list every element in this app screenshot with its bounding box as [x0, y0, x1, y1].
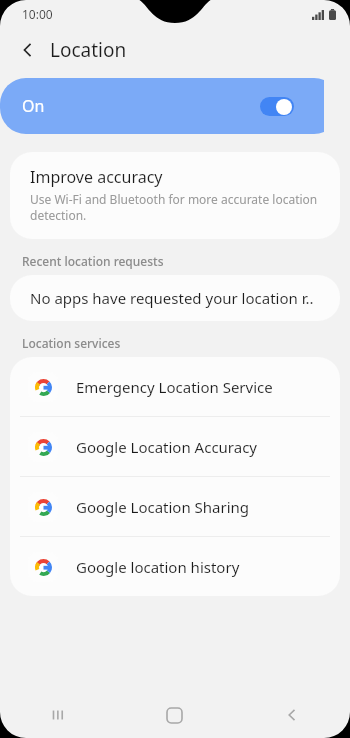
- button[interactable]: Google Location Accuracy: [10, 417, 340, 476]
- button[interactable]: Emergency Location Service: [10, 357, 340, 416]
- staticText: Use Wi-Fi and Bluetooth for more accurat…: [30, 191, 322, 223]
- button[interactable]: Back: [233, 692, 350, 738]
- staticText: No apps have requested your location r..: [30, 288, 314, 308]
- button[interactable]: Google location history: [10, 537, 340, 596]
- button[interactable]: No apps have requested your location r..: [10, 275, 340, 321]
- staticText: 10:00: [22, 6, 53, 22]
- button[interactable]: Location on: [260, 97, 294, 116]
- button[interactable]: Google Location Sharing: [10, 477, 340, 536]
- staticText: Google location history: [76, 557, 240, 577]
- staticText: Location services: [22, 335, 121, 351]
- staticText: On: [22, 95, 45, 117]
- staticText: Google Location Accuracy: [76, 437, 258, 457]
- staticText: Emergency Location Service: [76, 377, 273, 397]
- button[interactable]: Improve accuracy: [10, 152, 340, 239]
- staticText: Improve accuracy: [30, 166, 163, 188]
- staticText: Location: [50, 37, 127, 63]
- button[interactable]: Back: [10, 32, 46, 68]
- staticText: Google Location Sharing: [76, 497, 250, 517]
- staticText: Recent location requests: [22, 253, 164, 269]
- button[interactable]: Home: [116, 692, 233, 738]
- button[interactable]: On: [0, 78, 324, 134]
- button[interactable]: Recents: [0, 692, 116, 738]
